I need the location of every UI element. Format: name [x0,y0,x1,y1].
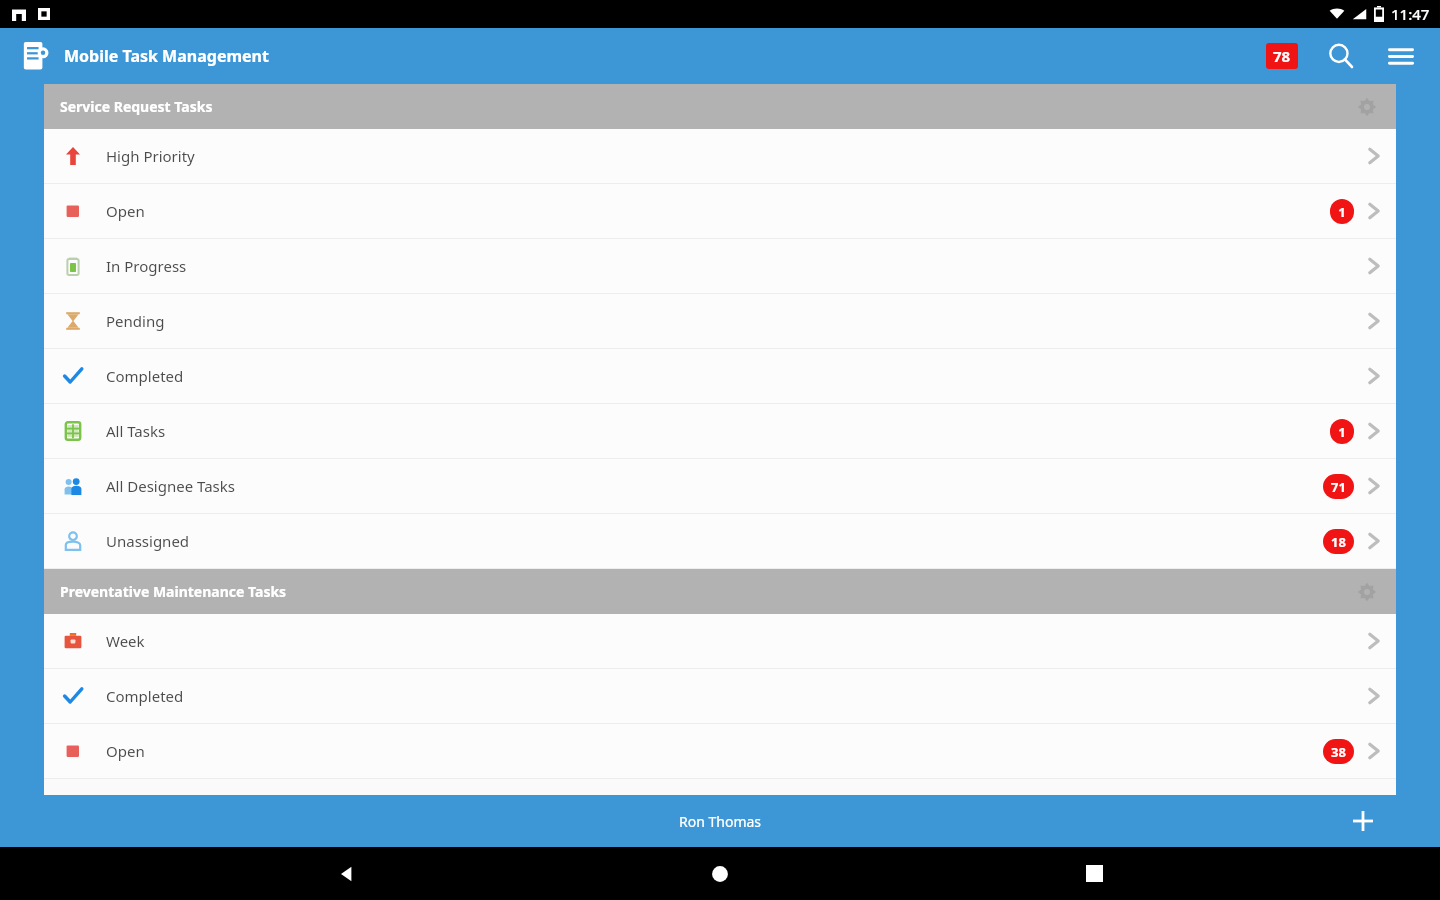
button[interactable]: All Tasks [44,404,1396,458]
staticText: Completed [106,366,184,386]
button[interactable]: Menu [1384,39,1418,73]
staticText: Service Request Tasks [60,97,213,116]
button[interactable]: Unassigned [44,514,1396,568]
staticText: 1 [1338,203,1346,221]
button[interactable]: Service Request Tasks [44,84,1396,129]
button[interactable]: Notifications 78 [1266,43,1298,69]
other: App logo [20,40,52,72]
staticText: Unassigned [106,531,190,551]
staticText: Preventative Maintenance Tasks [60,582,287,601]
button[interactable]: High Priority [44,129,1396,183]
button[interactable]: Home [693,847,747,900]
staticText: High Priority [106,146,195,166]
staticText: Mobile Task Management [64,45,269,67]
staticText: 11:47 [1391,4,1430,24]
button[interactable]: Recents [1067,847,1121,900]
button[interactable]: Preventative Maintenance Tasks [44,569,1396,614]
staticText: Week [106,631,145,651]
button[interactable]: All Designee Tasks [44,459,1396,513]
staticText: In Progress [106,256,187,276]
staticText: 18 [1331,533,1346,551]
button[interactable]: Week [44,614,1396,668]
staticText: Pending [106,311,165,331]
staticText: All Tasks [106,421,166,441]
staticText: All Designee Tasks [106,476,235,496]
button[interactable]: Completed [44,669,1396,723]
button[interactable]: In Progress [44,239,1396,293]
staticText: 38 [1331,743,1346,761]
staticText: 1 [1338,423,1346,441]
staticText: Completed [106,686,184,706]
button[interactable]: Search [1324,39,1358,73]
button[interactable]: App logo [20,40,269,72]
button[interactable]: Open [44,724,1396,778]
staticText: 71 [1331,478,1346,496]
button[interactable]: Ron Thomas [679,812,762,831]
button[interactable]: Back [320,847,374,900]
button[interactable]: Section settings [1354,579,1380,605]
staticText: Open [106,201,145,221]
button[interactable]: Completed [44,349,1396,403]
button[interactable]: Pending [44,294,1396,348]
button[interactable]: Open [44,184,1396,238]
button[interactable]: Section settings [1354,94,1380,120]
button[interactable]: Add [1346,804,1380,838]
staticText: 78 [1273,46,1291,66]
staticText: Open [106,741,145,761]
